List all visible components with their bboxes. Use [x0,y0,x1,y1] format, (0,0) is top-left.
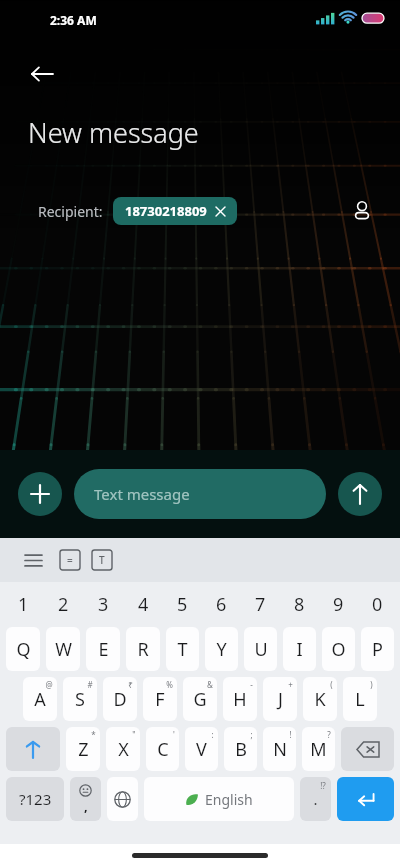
staticText: A [34,687,46,712]
staticText: & [207,679,213,690]
staticText: : [211,729,214,740]
button[interactable]: Clipboard [60,550,80,570]
staticText: K [314,687,326,712]
staticText: English [205,790,253,809]
button[interactable]: E [86,627,120,671]
button[interactable]: X [106,727,140,771]
staticText: 3 [98,592,109,617]
button[interactable]: F [143,677,177,721]
button[interactable]: Change language [107,777,138,821]
button[interactable]: V [185,727,218,771]
staticText: . [313,789,318,809]
button[interactable]: T [166,627,199,671]
staticText: V [196,737,207,762]
button[interactable]: L [343,677,377,721]
button[interactable]: 5 [163,584,202,624]
staticText: 2:36 AM [50,12,97,28]
staticText: G [193,687,207,712]
button[interactable]: 9 [319,584,358,624]
staticText: @ [45,679,53,690]
staticText: ) [370,679,373,690]
button[interactable]: English [144,777,294,821]
staticText: ' [173,729,175,740]
staticText: E [98,637,109,662]
button[interactable]: R [126,627,160,671]
button[interactable]: U [244,627,277,671]
button[interactable]: G [183,677,217,721]
staticText: W [55,637,72,662]
button[interactable]: B [224,727,257,771]
button[interactable]: W [46,627,80,671]
button[interactable]: O [322,627,355,671]
staticText: New message [28,114,199,151]
button[interactable]: Y [205,627,238,671]
button[interactable]: C [146,727,179,771]
button[interactable]: Q [6,627,40,671]
button[interactable]: Backspace [341,727,394,771]
staticText: B [235,737,247,762]
staticText: 2 [58,592,69,617]
button[interactable]: Shift [6,727,60,771]
staticText: 4 [138,592,149,617]
staticText: , [84,797,88,815]
button[interactable]: Enter [337,777,394,821]
staticText: Text message [94,484,190,504]
button[interactable]: Menu [18,545,48,575]
staticText: 5 [177,592,188,617]
button[interactable]: ?123 [6,777,64,821]
button[interactable]: 3 [83,584,123,624]
button[interactable]: I [283,627,316,671]
staticText: 9 [333,592,344,617]
staticText: Z [78,737,89,762]
button[interactable]: Back [18,50,66,98]
button[interactable]: Choose contact [342,191,382,231]
staticText: Y [216,637,227,662]
button[interactable]: Add attachment [18,472,62,516]
staticText: J [278,687,283,712]
button[interactable]: Emoji and comma [70,777,101,821]
staticText: H [233,687,247,712]
staticText: + [288,679,293,690]
staticText: S [75,687,85,712]
staticText: ?123 [19,789,52,809]
button[interactable]: D [103,677,137,721]
staticText: = [67,553,73,567]
button[interactable]: 8 [280,584,319,624]
button[interactable]: A [23,677,57,721]
staticText: T [177,637,188,662]
button[interactable]: 2 [43,584,83,624]
button[interactable]: N [263,727,296,771]
button[interactable]: M [302,727,335,771]
staticText: ? [327,729,331,740]
staticText: 1 [18,592,29,617]
button[interactable]: 4 [123,584,163,624]
button[interactable]: 18730218809 [113,197,237,225]
button[interactable]: 6 [202,584,241,624]
staticText: 0 [372,592,383,617]
button[interactable]: Z [66,727,100,771]
button[interactable]: Send [338,472,382,516]
staticText: Q [16,637,31,662]
staticText: ! [289,729,292,740]
button[interactable]: 1 [3,584,43,624]
button[interactable]: H [223,677,257,721]
button[interactable]: K [303,677,337,721]
staticText: 8 [294,592,305,617]
staticText: X [118,737,129,762]
staticText: T [99,553,105,567]
staticText: # [87,679,93,690]
staticText: 18730218809 [125,202,207,220]
staticText: !? [320,780,326,791]
staticText: I [296,637,303,662]
staticText: N [273,737,287,762]
button[interactable]: 7 [241,584,280,624]
staticText: O [331,637,346,662]
button[interactable]: S [63,677,97,721]
staticText: ( [330,679,333,690]
button[interactable]: J [263,677,297,721]
button[interactable]: P [361,627,394,671]
button[interactable]: Text message [74,469,326,519]
button[interactable]: 0 [358,584,397,624]
button[interactable]: . [300,777,331,821]
button[interactable]: Text style [92,550,112,570]
